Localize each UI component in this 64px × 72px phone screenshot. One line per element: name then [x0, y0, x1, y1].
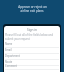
- staticText: Department: [5, 54, 20, 58]
- staticText: Email: [5, 48, 12, 52]
- staticText: Approve or reject an: [18, 5, 47, 9]
- button[interactable]: Department: [5, 54, 59, 60]
- staticText: Name: [5, 42, 13, 46]
- staticText: submit your request: [5, 37, 30, 41]
- staticText: Route: [5, 60, 13, 64]
- staticText: Comment: [5, 64, 18, 68]
- staticText: airline exit plans: [20, 9, 44, 13]
- button[interactable]: Route: [5, 60, 59, 66]
- staticText: Please fill out all of the fields below …: [5, 33, 53, 37]
- button[interactable]: Email: [5, 48, 59, 54]
- button[interactable]: Comment: [5, 64, 59, 70]
- button[interactable]: Name: [5, 42, 59, 48]
- staticText: Sign in: [5, 28, 59, 32]
